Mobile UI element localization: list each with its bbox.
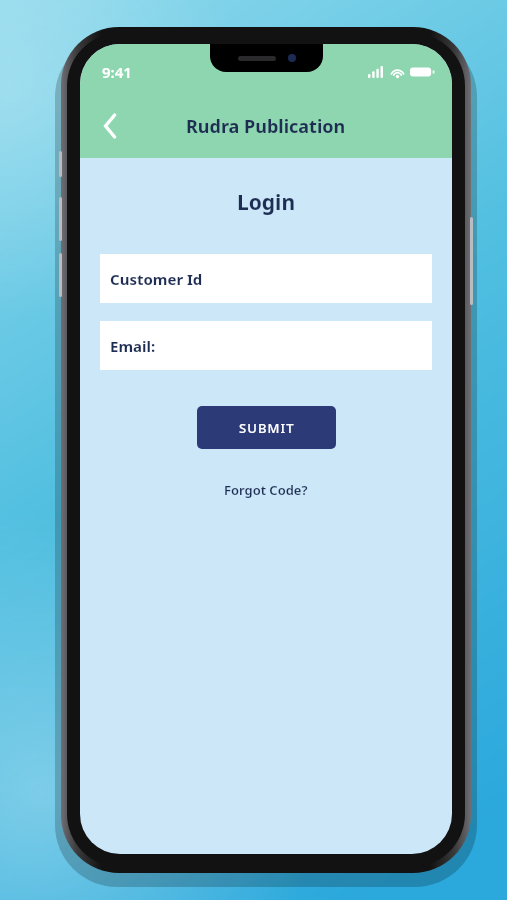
staticText: 9:41 xyxy=(102,62,132,82)
button[interactable]: Email: xyxy=(100,321,432,370)
staticText: Login xyxy=(80,188,452,217)
button[interactable]: Forgot Code? xyxy=(214,477,318,503)
staticText: Email: xyxy=(110,336,156,356)
staticText: SUBMIT xyxy=(239,419,295,437)
staticText: Forgot Code? xyxy=(224,481,308,499)
staticText: Rudra Publication xyxy=(186,114,346,139)
button[interactable]: SUBMIT xyxy=(197,406,336,449)
staticText: Customer Id xyxy=(110,269,203,289)
button[interactable]: Customer Id xyxy=(100,254,432,303)
button[interactable]: Back xyxy=(88,104,132,148)
